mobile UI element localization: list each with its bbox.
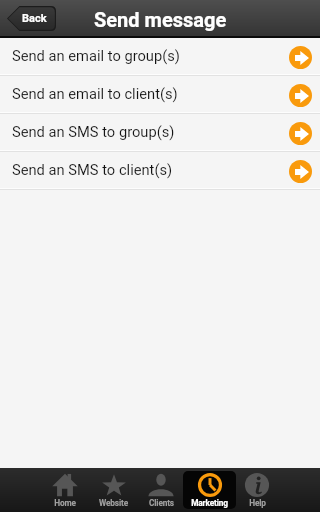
staticText: Home — [54, 498, 76, 508]
staticText: Help — [249, 498, 266, 508]
button[interactable]: Send an email to client(s) — [0, 76, 320, 114]
button[interactable]: Home — [41, 468, 89, 512]
staticText: Send an SMS to client(s) — [12, 161, 289, 178]
staticText: Send an email to group(s) — [12, 47, 289, 64]
button[interactable]: Website — [89, 468, 137, 512]
button[interactable]: Marketing — [185, 468, 233, 512]
button[interactable]: Send an SMS to client(s) — [0, 152, 320, 190]
button[interactable]: Send an email to group(s) — [0, 38, 320, 76]
button[interactable]: Clients — [137, 468, 185, 512]
staticText: Back — [22, 12, 47, 25]
staticText: Clients — [149, 498, 174, 508]
button[interactable]: Send an SMS to group(s) — [0, 114, 320, 152]
staticText: Send an SMS to group(s) — [12, 123, 289, 140]
button[interactable]: Help — [233, 468, 281, 512]
staticText: Send message — [94, 8, 227, 31]
staticText: Send an email to client(s) — [12, 85, 289, 102]
staticText: Website — [99, 498, 128, 508]
button[interactable]: Back — [7, 6, 56, 31]
staticText: Marketing — [191, 498, 228, 508]
